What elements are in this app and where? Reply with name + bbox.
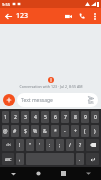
staticText: & bbox=[43, 128, 47, 135]
button[interactable]: ' bbox=[36, 139, 44, 151]
staticText: * bbox=[54, 128, 57, 135]
staticText: ; bbox=[59, 142, 61, 149]
button[interactable]: Home bbox=[26, 167, 51, 180]
button[interactable]: Send SMS bbox=[88, 96, 94, 105]
button[interactable]: . bbox=[76, 153, 84, 165]
button[interactable]: Call bbox=[75, 9, 89, 23]
button[interactable]: Recent apps bbox=[51, 167, 76, 180]
button[interactable]: 2 bbox=[11, 111, 19, 123]
button[interactable]: ; bbox=[56, 139, 64, 151]
button[interactable]: 5 bbox=[41, 111, 49, 123]
button[interactable]: 6 bbox=[51, 111, 59, 123]
button[interactable]: ) bbox=[91, 125, 99, 137]
staticText: 9:55 bbox=[2, 2, 10, 7]
button[interactable]: ( bbox=[81, 125, 89, 137]
button[interactable]: - bbox=[61, 125, 69, 137]
button[interactable]: % bbox=[31, 125, 39, 137]
button[interactable]: $ bbox=[21, 125, 29, 137]
staticText: ( bbox=[84, 128, 86, 135]
staticText: 4 bbox=[34, 114, 37, 121]
staticText: 1 bbox=[4, 114, 7, 121]
button[interactable]: 0 bbox=[91, 111, 99, 123]
button[interactable]: Text message bbox=[17, 93, 98, 107]
staticText: @ bbox=[3, 128, 8, 135]
staticText: . bbox=[79, 156, 81, 163]
staticText: Conversation with 123 · Jul 2, 8:55 AM bbox=[19, 84, 83, 89]
staticText: Text message bbox=[21, 97, 53, 104]
button[interactable]: Symbols bbox=[2, 139, 14, 151]
button[interactable]: + bbox=[71, 125, 79, 137]
staticText: 8 bbox=[74, 114, 77, 121]
button[interactable]: 4 bbox=[31, 111, 39, 123]
button[interactable]: : bbox=[46, 139, 54, 151]
staticText: , bbox=[19, 156, 21, 163]
button[interactable]: Backspace bbox=[86, 139, 99, 151]
staticText: ABC bbox=[5, 157, 12, 162]
button[interactable]: ! bbox=[16, 139, 24, 151]
staticText: + bbox=[74, 128, 77, 135]
button[interactable]: Switch input method bbox=[76, 167, 101, 180]
staticText: 6 bbox=[54, 114, 57, 121]
button[interactable]: Hide keyboard bbox=[0, 167, 26, 180]
staticText: # bbox=[13, 128, 17, 135]
button[interactable]: Enter bbox=[86, 153, 99, 165]
button[interactable]: ? bbox=[76, 139, 84, 151]
button[interactable]: 3 bbox=[21, 111, 29, 123]
button[interactable]: * bbox=[51, 125, 59, 137]
staticText: 0 bbox=[94, 114, 97, 121]
staticText: 3 bbox=[24, 114, 27, 121]
staticText: $ bbox=[24, 128, 27, 135]
staticText: : bbox=[49, 142, 51, 149]
button[interactable]: 7 bbox=[61, 111, 69, 123]
button[interactable]: 8 bbox=[71, 111, 79, 123]
staticText: ) bbox=[94, 128, 96, 135]
staticText: " bbox=[29, 142, 32, 149]
staticText: ! bbox=[19, 142, 21, 149]
button[interactable]: Letters bbox=[2, 153, 14, 165]
staticText: 7 bbox=[64, 114, 67, 121]
staticText: ? bbox=[79, 142, 82, 149]
button[interactable]: Back bbox=[0, 8, 16, 24]
staticText: / bbox=[69, 142, 71, 149]
staticText: =\< bbox=[6, 143, 11, 147]
button[interactable]: 1 bbox=[2, 111, 9, 123]
button[interactable]: 9 bbox=[81, 111, 89, 123]
button[interactable]: # bbox=[11, 125, 19, 137]
button[interactable]: " bbox=[26, 139, 34, 151]
button[interactable]: / bbox=[66, 139, 74, 151]
button[interactable]: 123 bbox=[16, 11, 29, 21]
button[interactable]: Video call bbox=[61, 9, 75, 23]
staticText: 9 bbox=[84, 114, 87, 121]
staticText: 5 bbox=[44, 114, 47, 121]
button[interactable]: @ bbox=[2, 125, 9, 137]
button[interactable]: Add attachment bbox=[3, 94, 15, 106]
staticText: ' bbox=[39, 142, 41, 149]
staticText: SMS bbox=[88, 101, 94, 105]
button[interactable]: , bbox=[16, 153, 24, 165]
button[interactable]: & bbox=[41, 125, 49, 137]
staticText: - bbox=[64, 128, 66, 135]
staticText: % bbox=[33, 128, 38, 135]
button[interactable]: More options bbox=[89, 10, 101, 22]
staticText: 2 bbox=[14, 114, 17, 121]
